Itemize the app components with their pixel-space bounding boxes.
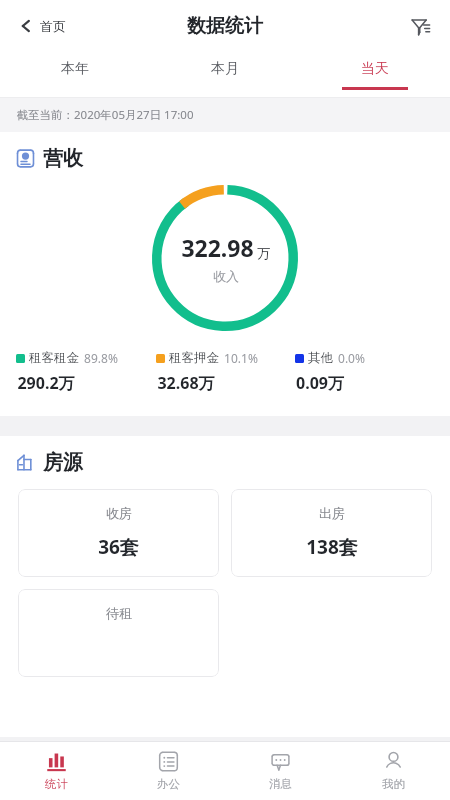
staticText: 其他	[308, 350, 333, 366]
button[interactable]: 待租	[18, 589, 219, 677]
staticText: 290.2万	[17, 372, 75, 394]
staticText: 32.68万	[157, 372, 215, 394]
staticText: 租客押金	[169, 350, 219, 366]
button[interactable]: 本年	[0, 52, 150, 98]
staticText: 0.0%	[338, 350, 365, 366]
staticText: 89.8%	[84, 350, 118, 366]
staticText: 截至当前：2020年05月27日 17:00	[16, 107, 194, 123]
staticText: 10.1%	[224, 350, 258, 366]
staticText: 办公	[157, 777, 180, 791]
staticText: 36套	[98, 534, 139, 560]
staticText: 本年	[61, 60, 89, 78]
staticText: 营收	[43, 146, 83, 171]
button[interactable]: 出房	[231, 489, 432, 577]
staticText: 0.09万	[296, 372, 344, 394]
staticText: 首页	[40, 18, 66, 34]
button[interactable]: 我的	[337, 742, 450, 800]
staticText: 出房	[319, 505, 345, 521]
button[interactable]: 消息	[224, 742, 337, 800]
staticText: 数据统计	[187, 14, 263, 38]
button[interactable]: 统计	[0, 742, 112, 800]
staticText: 当天	[361, 60, 389, 78]
staticText: 租客租金	[29, 350, 79, 366]
button[interactable]: 收房	[18, 489, 219, 577]
button[interactable]: Filter	[403, 9, 438, 44]
button[interactable]: Back	[14, 12, 70, 40]
staticText: 房源	[43, 450, 83, 475]
staticText: 统计	[45, 777, 68, 791]
staticText: 本月	[211, 60, 239, 78]
button[interactable]: 办公	[112, 742, 224, 800]
staticText: 我的	[382, 777, 405, 791]
staticText: 万	[257, 245, 270, 261]
staticText: 138套	[306, 534, 358, 560]
staticText: 待租	[106, 605, 132, 621]
staticText: 322.98	[181, 232, 254, 263]
button[interactable]: 本月	[150, 52, 300, 98]
staticText: 收房	[106, 505, 132, 521]
staticText: 收入	[213, 268, 239, 284]
button[interactable]: 当天	[300, 52, 450, 98]
other: Back	[18, 18, 34, 34]
staticText: 消息	[269, 777, 292, 791]
